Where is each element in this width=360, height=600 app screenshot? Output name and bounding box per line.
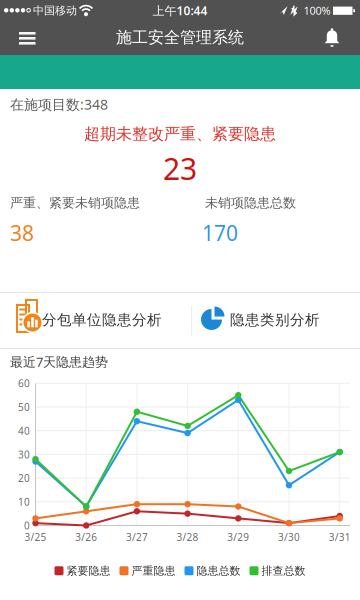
staticText: 50 — [18, 400, 30, 414]
staticText: 严重隐患 — [131, 564, 175, 577]
staticText: 严重、紧要未销项隐患 — [10, 195, 140, 211]
staticText: 170 — [202, 219, 238, 247]
staticText: 23 — [163, 148, 197, 188]
staticText: 3/31 — [329, 530, 351, 544]
staticText: 中国移动 — [33, 4, 77, 17]
staticText: 未销项隐患总数 — [205, 195, 296, 211]
button[interactable]: 隐患类别分析 — [192, 293, 360, 348]
staticText: 3/28 — [177, 530, 199, 544]
button[interactable]: Notifications — [310, 20, 354, 55]
staticText: 3/29 — [227, 530, 249, 544]
staticText: 施工安全管理系统 — [116, 28, 244, 47]
staticText: 30 — [18, 448, 30, 461]
staticText: 超期未整改严重、紧要隐患 — [84, 124, 276, 144]
staticText: 3/26 — [75, 530, 97, 544]
staticText: 0 — [24, 519, 30, 532]
staticText: 上午10:44 — [152, 2, 207, 18]
staticText: 排查总数 — [261, 564, 305, 577]
staticText: 分包单位隐患分析 — [42, 311, 162, 329]
staticText: 40 — [18, 424, 30, 437]
staticText: 20 — [18, 472, 30, 485]
staticText: 3/30 — [278, 530, 300, 544]
staticText: 隐患总数 — [196, 564, 240, 577]
button[interactable]: Menu — [5, 20, 49, 55]
staticText: 隐患类别分析 — [230, 311, 320, 329]
staticText: 10 — [18, 495, 30, 509]
staticText: 在施项目数:348 — [10, 95, 108, 114]
button[interactable]: 分包单位隐患分析 — [0, 293, 191, 348]
staticText: 38 — [10, 219, 34, 247]
staticText: 100% — [303, 3, 330, 18]
staticText: 3/25 — [24, 530, 46, 544]
staticText: 60 — [18, 377, 30, 390]
staticText: 紧要隐患 — [66, 564, 110, 577]
staticText: 3/27 — [126, 530, 148, 544]
staticText: 最近7天隐患趋势 — [10, 353, 108, 370]
